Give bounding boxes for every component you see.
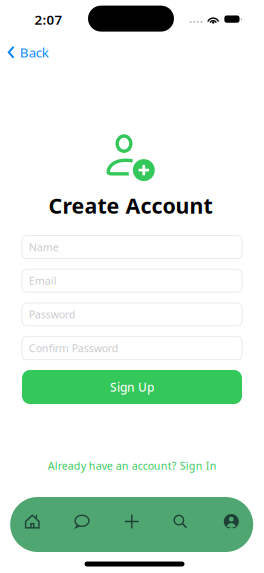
staticText: 2:07 [34,11,62,28]
button[interactable]: Messages [65,506,99,536]
staticText: Sign Up [110,379,154,395]
button[interactable]: Home [15,506,49,536]
button[interactable]: Profile [214,506,248,536]
button[interactable]: Already have an account? Sign In [40,453,225,478]
button[interactable]: Sign Up [22,370,242,404]
staticText: Back [20,43,49,61]
button[interactable]: Create [115,506,149,536]
button[interactable]: Email [22,269,242,292]
button[interactable]: Password [22,303,242,326]
staticText: Already have an account? Sign In [48,458,217,473]
staticText: Name [29,240,59,254]
button[interactable]: Confirm Password [22,337,242,360]
staticText: Confirm Password [29,341,119,355]
button[interactable]: Search [163,506,197,536]
staticText: Email [29,274,57,288]
staticText: Password [29,307,76,321]
button[interactable]: Name [22,235,242,258]
staticText: Create Account [48,191,212,220]
button[interactable]: Back [2,36,59,68]
